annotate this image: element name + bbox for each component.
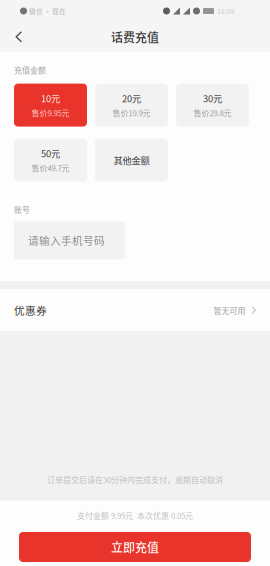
- staticText: 30元: [203, 91, 222, 105]
- staticText: 充值金额: [14, 64, 46, 76]
- staticText: 微信 · 现在: [29, 6, 66, 16]
- staticText: 优惠券: [14, 302, 47, 318]
- staticText: 支付金额 9.95元 本次优惠 0.05元: [77, 509, 193, 521]
- staticText: 账号: [14, 204, 30, 215]
- staticText: 售价9.95元: [31, 107, 69, 119]
- button[interactable]: 30元: [176, 84, 249, 127]
- button[interactable]: 其他金额: [95, 139, 168, 182]
- button[interactable]: 50元: [14, 139, 87, 182]
- staticText: 请输入手机号码: [28, 232, 105, 248]
- staticText: 10元: [41, 91, 60, 105]
- staticText: 售价19.9元: [112, 107, 150, 119]
- staticText: 50元: [41, 146, 60, 160]
- staticText: 16:06: [217, 6, 235, 16]
- staticText: 售价49.7元: [31, 162, 69, 174]
- staticText: 20元: [122, 91, 141, 105]
- staticText: 话费充值: [111, 28, 159, 46]
- button[interactable]: Back: [10, 26, 28, 48]
- button[interactable]: 请输入手机号码: [14, 221, 125, 259]
- staticText: 订单提交后请在30分钟内完成支付，逾期自动取消: [47, 474, 223, 485]
- staticText: 立即充值: [111, 538, 159, 556]
- button[interactable]: 优惠券: [0, 289, 270, 331]
- staticText: 暂无可用: [213, 304, 245, 316]
- staticText: 其他金额: [113, 153, 149, 167]
- button[interactable]: 10元: [14, 84, 87, 127]
- button[interactable]: 立即充值: [19, 532, 251, 562]
- staticText: 售价29.8元: [193, 107, 231, 119]
- button[interactable]: 20元: [95, 84, 168, 127]
